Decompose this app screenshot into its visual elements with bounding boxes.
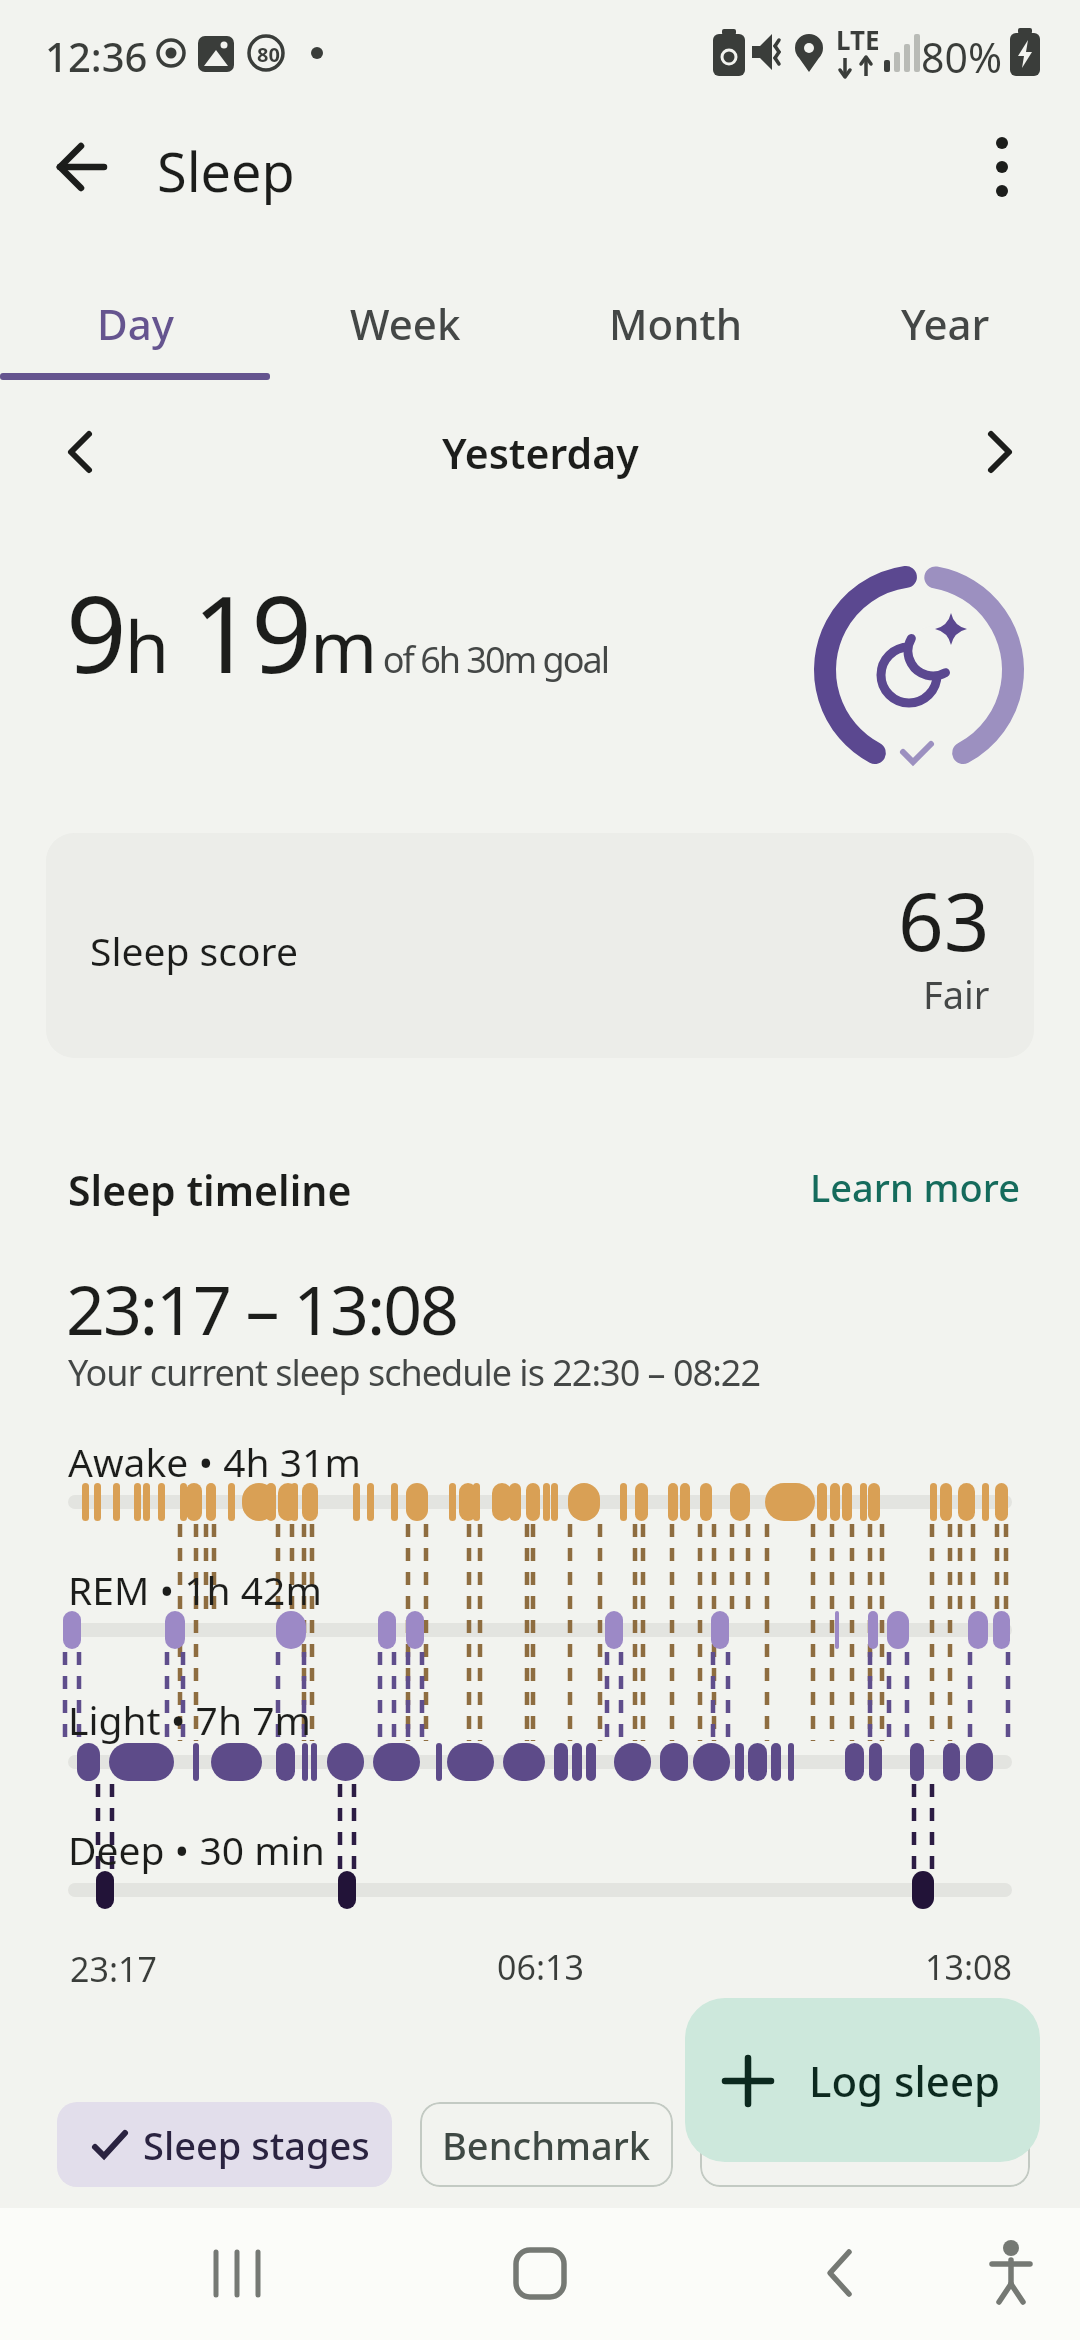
staticText: REM • 1h 42m <box>68 1563 322 1616</box>
staticText: Sleep stages <box>143 2119 370 2171</box>
staticText: 06:13 <box>497 1944 584 1990</box>
button[interactable] <box>40 414 116 490</box>
staticText: LTE <box>836 22 880 57</box>
staticText: 23:17 – 13:08 <box>66 1262 457 1355</box>
staticText: 80 <box>257 41 280 68</box>
button[interactable]: Day <box>0 295 270 380</box>
staticText: Sleep <box>157 134 295 208</box>
staticText: 80% <box>921 29 1002 85</box>
staticText: Light • 7h 7m <box>68 1693 311 1746</box>
button[interactable]: Yesterday <box>442 425 639 481</box>
staticText: Month <box>609 295 742 352</box>
staticText: Awake • 4h 31m <box>68 1435 361 1488</box>
button[interactable]: Learn more <box>810 1161 1020 1213</box>
staticText: Sleep score <box>90 924 298 977</box>
staticText: 63 <box>898 865 990 974</box>
staticText: Benchmark <box>442 2119 651 2171</box>
button[interactable] <box>497 2230 583 2316</box>
button[interactable] <box>40 130 120 210</box>
staticText: Log sleep <box>809 2052 1001 2109</box>
button[interactable]: Year <box>810 295 1080 380</box>
staticText: Week <box>350 295 461 352</box>
button[interactable]: Month <box>540 295 810 380</box>
staticText: Deep • 30 min <box>68 1823 325 1876</box>
button[interactable]: Log sleep <box>685 1998 1040 2162</box>
button[interactable] <box>962 127 1042 207</box>
button[interactable]: Sleep stages <box>57 2102 392 2187</box>
staticText: 13:08 <box>925 1944 1012 1990</box>
staticText: 9h 19m of 6h 30m goal <box>66 560 608 704</box>
button[interactable] <box>196 2230 282 2316</box>
button[interactable] <box>700 2102 1030 2187</box>
button[interactable] <box>797 2230 883 2316</box>
button[interactable]: Benchmark <box>420 2102 673 2187</box>
staticText: Year <box>901 295 990 352</box>
button[interactable] <box>46 833 1034 1058</box>
staticText: 23:17 <box>70 1946 157 1992</box>
button[interactable]: Week <box>270 295 540 380</box>
staticText: Day <box>97 295 174 352</box>
staticText: Fair <box>923 968 990 1020</box>
button[interactable] <box>964 414 1040 490</box>
staticText: Sleep timeline <box>68 1162 352 1218</box>
button[interactable] <box>968 2230 1054 2316</box>
staticText: 12:36 <box>45 29 148 83</box>
staticText: Your current sleep schedule is 22:30 – 0… <box>68 1348 760 1397</box>
